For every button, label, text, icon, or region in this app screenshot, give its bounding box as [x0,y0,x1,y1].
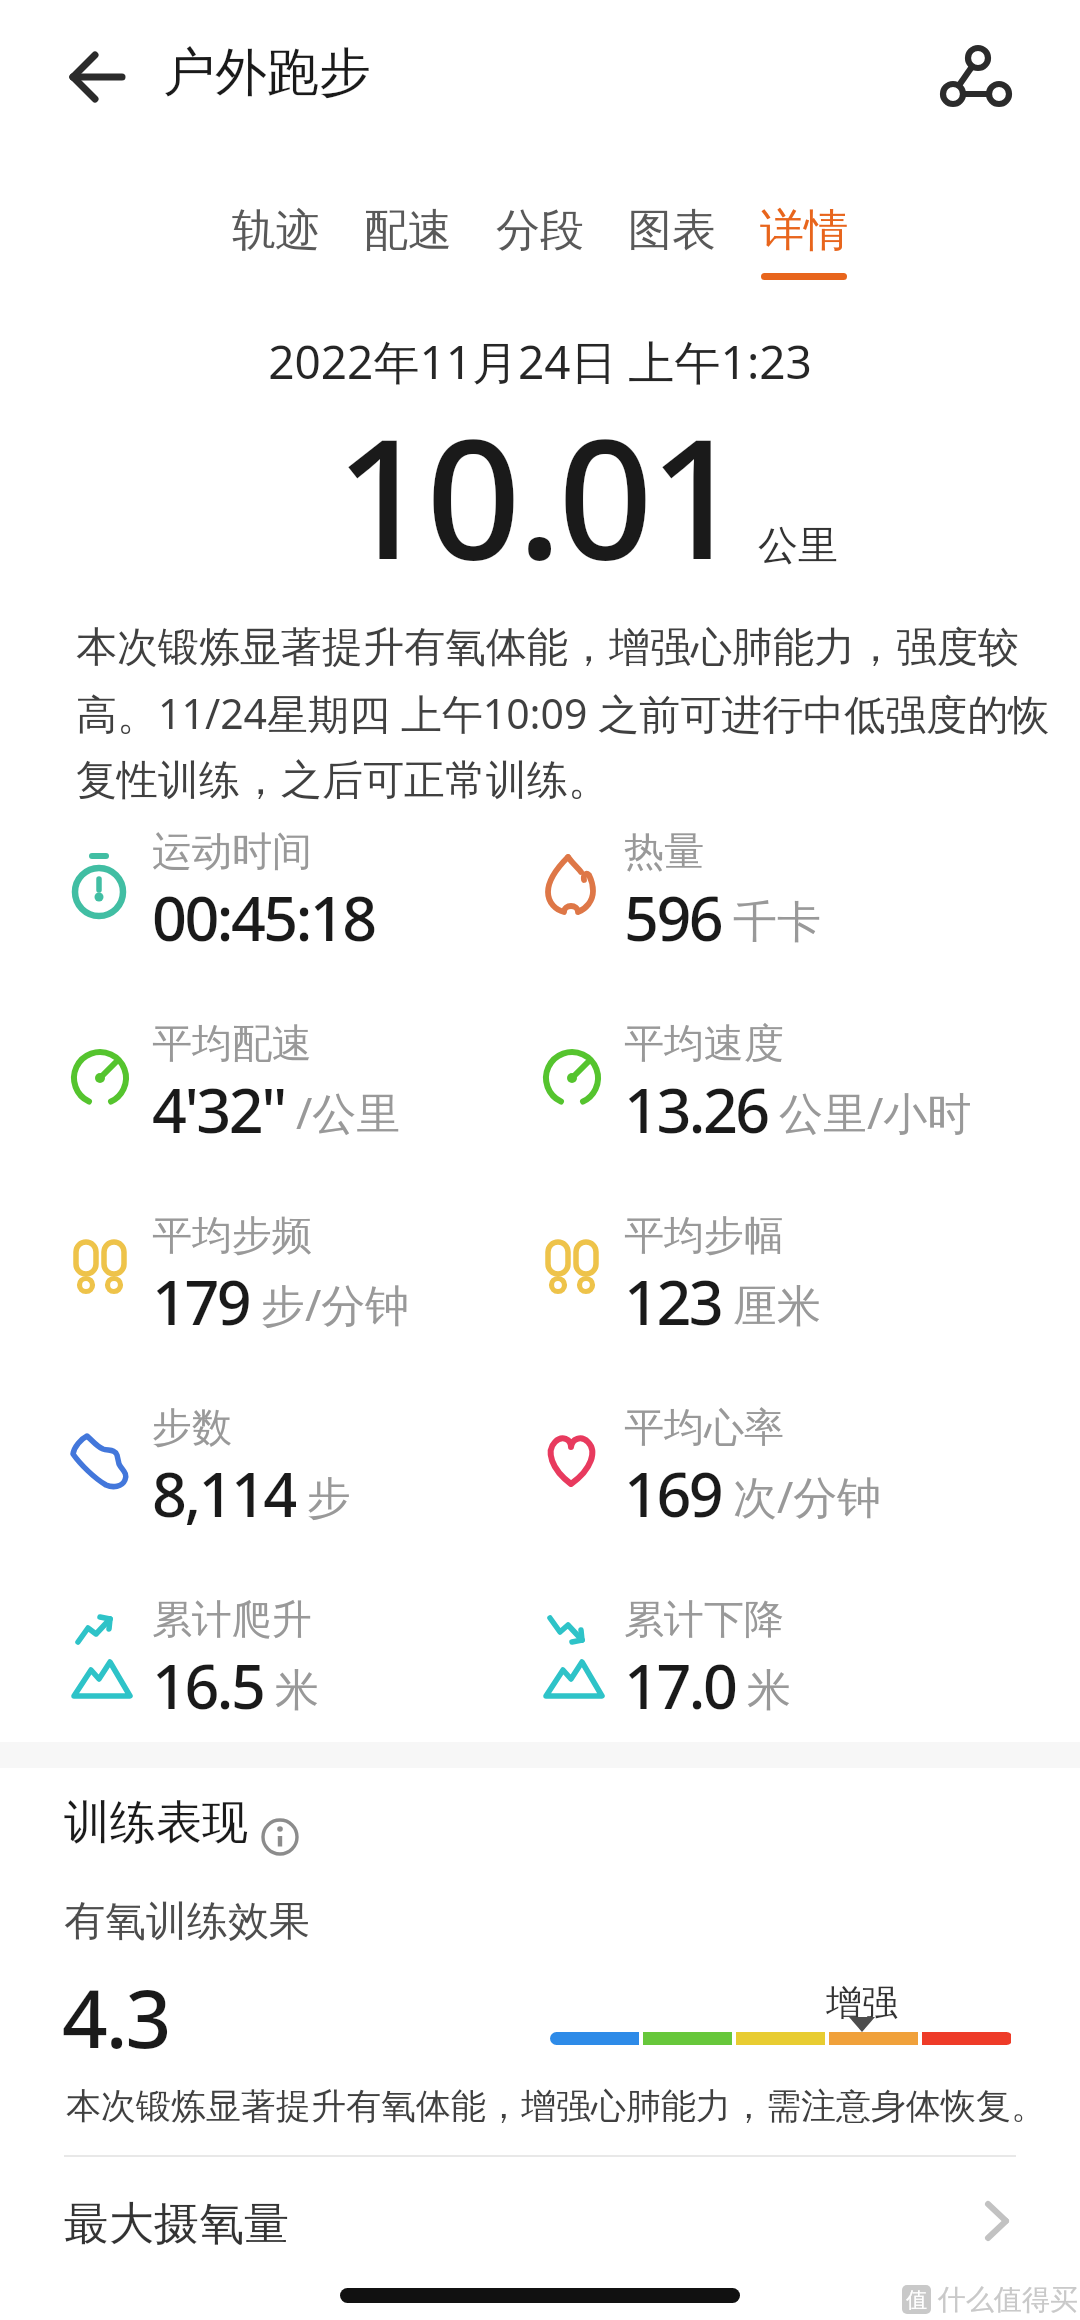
staticText: 123 [624,1260,722,1340]
staticText: 最大摄氧量 [64,2196,289,2253]
staticText: 本次锻炼显著提升有氧体能，增强心肺能力，需注意身体恢复。 [66,2084,1046,2128]
staticText: /公里 [296,1082,401,1142]
staticText: 次/分钟 [733,1466,882,1526]
staticText: 累计爬升 [152,1594,312,1644]
staticText: 什么值得买 [938,2282,1078,2317]
button[interactable]: 配速 [364,203,452,280]
staticText: 配速 [364,203,452,258]
staticText: 16.5 [152,1644,264,1724]
staticText: 户外跑步 [163,40,371,106]
staticText: 步/分钟 [261,1274,410,1334]
button[interactable]: 平均步频 [70,1210,540,1340]
staticText: 10.01 [335,382,740,608]
button[interactable]: 平均心率 [542,1402,1012,1532]
staticText: 13.26 [624,1068,768,1148]
button[interactable]: 详情 [760,203,848,280]
button[interactable]: 平均速度 [542,1018,1012,1148]
button[interactable]: 分段 [496,203,584,280]
staticText: 增强 [826,1980,898,2025]
staticText: 千卡 [733,895,821,950]
staticText: 平均步频 [152,1210,312,1260]
button[interactable] [260,1817,300,1857]
button[interactable] [941,44,1009,112]
staticText: 分段 [496,203,584,258]
staticText: 平均速度 [624,1018,784,1068]
staticText: 平均步幅 [624,1210,784,1260]
button[interactable]: 最大摄氧量 [0,2170,1080,2280]
staticText: 步 [307,1471,351,1526]
staticText: 运动时间 [152,826,312,876]
staticText: 值 [906,2287,927,2313]
staticText: 热量 [624,826,704,876]
staticText: 公里/小时 [779,1082,972,1142]
button[interactable]: 平均配速 [70,1018,540,1148]
button[interactable]: 运动时间 [70,826,540,956]
staticText: 4'32" [152,1068,285,1148]
staticText: 169 [624,1452,722,1532]
staticText: 平均配速 [152,1018,312,1068]
staticText: 厘米 [733,1279,821,1334]
button[interactable]: 平均步幅 [542,1210,1012,1340]
button[interactable]: 图表 [628,203,716,280]
staticText: 累计下降 [624,1594,784,1644]
button[interactable]: 轨迹 [232,203,320,280]
button[interactable]: 热量 [542,826,1012,956]
staticText: 有氧训练效果 [64,1896,310,1948]
staticText: 596 [624,876,722,956]
staticText: 4.3 [62,1962,170,2071]
button[interactable]: 累计爬升 [70,1594,540,1724]
staticText: 米 [747,1663,791,1718]
staticText: 8,114 [152,1452,296,1532]
staticText: 轨迹 [232,203,320,258]
staticText: 训练表现 [64,1794,248,1852]
staticText: 米 [275,1663,319,1718]
staticText: 00:45:18 [152,876,375,956]
staticText: 平均心率 [624,1402,784,1452]
staticText: 图表 [628,203,716,258]
button[interactable] [68,50,126,108]
staticText: 公里 [758,520,838,570]
staticText: 17.0 [624,1644,736,1724]
staticText: 2022年11月24日 上午1:23 [0,330,1080,393]
button[interactable]: 累计下降 [542,1594,1012,1724]
staticText: 179 [152,1260,250,1340]
staticText: 步数 [152,1402,232,1452]
staticText: 本次锻炼显著提升有氧体能，增强心肺能力，强度较 高。11/24星期四 上午10:… [76,622,1076,806]
staticText: 详情 [760,203,848,258]
button[interactable]: 步数 [70,1402,540,1532]
